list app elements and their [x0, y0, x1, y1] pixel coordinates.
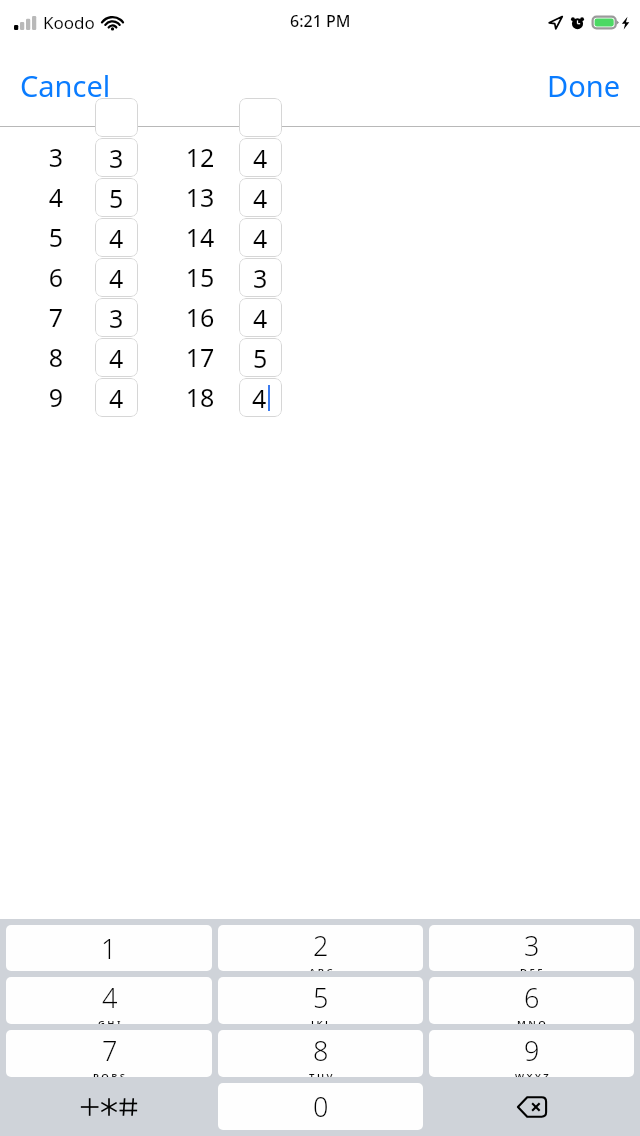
- staticText: Cancel: [20, 66, 111, 105]
- staticText: 3: [253, 261, 268, 295]
- button[interactable]: 4: [95, 258, 138, 297]
- button[interactable]: [239, 98, 282, 137]
- staticText: 14: [165, 220, 235, 254]
- staticText: A B C: [309, 965, 333, 971]
- button[interactable]: 3: [239, 258, 282, 297]
- staticText: 17: [165, 340, 235, 374]
- button[interactable]: 7: [6, 1030, 212, 1077]
- button[interactable]: 4: [239, 378, 282, 417]
- button[interactable]: Cancel: [0, 56, 131, 115]
- staticText: Koodo: [43, 11, 95, 34]
- staticText: 9: [524, 1032, 540, 1069]
- staticText: 7: [26, 300, 86, 334]
- button[interactable]: Done: [527, 56, 640, 115]
- staticText: 4: [109, 261, 124, 295]
- button[interactable]: 0: [218, 1083, 423, 1130]
- button[interactable]: 6: [429, 977, 634, 1024]
- staticText: P Q R S: [93, 1070, 126, 1077]
- button[interactable]: 2: [218, 925, 423, 971]
- button[interactable]: 4: [95, 378, 138, 417]
- staticText: 7: [102, 1032, 118, 1069]
- staticText: 3: [109, 301, 124, 335]
- staticText: 3: [26, 140, 86, 174]
- staticText: D E F: [520, 965, 543, 971]
- staticText: T U V: [309, 1070, 333, 1077]
- staticText: 8: [26, 340, 86, 374]
- button[interactable]: 4: [95, 338, 138, 377]
- staticText: 4: [109, 381, 124, 415]
- staticText: 16: [165, 300, 235, 334]
- staticText: 4: [253, 301, 268, 335]
- button[interactable]: 3: [95, 298, 138, 337]
- staticText: 3: [524, 927, 540, 964]
- staticText: 5: [26, 220, 86, 254]
- staticText: Done: [547, 66, 620, 105]
- staticText: 9: [26, 380, 86, 414]
- button[interactable]: 5: [218, 977, 423, 1024]
- button[interactable]: Plus star pound: [6, 1083, 212, 1130]
- button[interactable]: 3: [95, 138, 138, 177]
- staticText: 4: [253, 221, 268, 255]
- staticText: 1: [101, 930, 117, 967]
- staticText: 3: [109, 141, 124, 175]
- button[interactable]: 4: [239, 138, 282, 177]
- staticText: 18: [165, 380, 235, 414]
- button[interactable]: [95, 98, 138, 137]
- staticText: 4: [253, 141, 268, 175]
- staticText: 4: [253, 181, 268, 215]
- staticText: M N O: [517, 1017, 546, 1024]
- staticText: 6: [524, 979, 540, 1016]
- button[interactable]: 4: [6, 977, 212, 1024]
- button[interactable]: 5: [95, 178, 138, 217]
- button[interactable]: 4: [95, 218, 138, 257]
- button[interactable]: 3: [429, 925, 634, 971]
- staticText: 5: [313, 979, 329, 1016]
- staticText: 5: [109, 181, 124, 215]
- staticText: 5: [253, 341, 268, 375]
- staticText: 4: [252, 381, 267, 415]
- staticText: J K L: [311, 1017, 331, 1024]
- button[interactable]: 8: [218, 1030, 423, 1077]
- button[interactable]: Delete: [429, 1083, 634, 1130]
- button[interactable]: 9: [429, 1030, 634, 1077]
- button[interactable]: 5: [239, 338, 282, 377]
- staticText: 4: [102, 979, 118, 1016]
- staticText: 2: [313, 927, 329, 964]
- staticText: 6: [26, 260, 86, 294]
- staticText: 15: [165, 260, 235, 294]
- staticText: W X Y Z: [515, 1070, 549, 1077]
- staticText: 4: [26, 180, 86, 214]
- button[interactable]: 1: [6, 925, 212, 971]
- staticText: 13: [165, 180, 235, 214]
- staticText: 8: [313, 1032, 329, 1069]
- staticText: 12: [165, 140, 235, 174]
- button[interactable]: 4: [239, 298, 282, 337]
- staticText: 6:21 PM: [290, 10, 351, 32]
- staticText: 4: [109, 221, 124, 255]
- staticText: 4: [109, 341, 124, 375]
- staticText: G H I: [98, 1017, 121, 1024]
- button[interactable]: 4: [239, 218, 282, 257]
- button[interactable]: 4: [239, 178, 282, 217]
- staticText: 0: [313, 1088, 329, 1125]
